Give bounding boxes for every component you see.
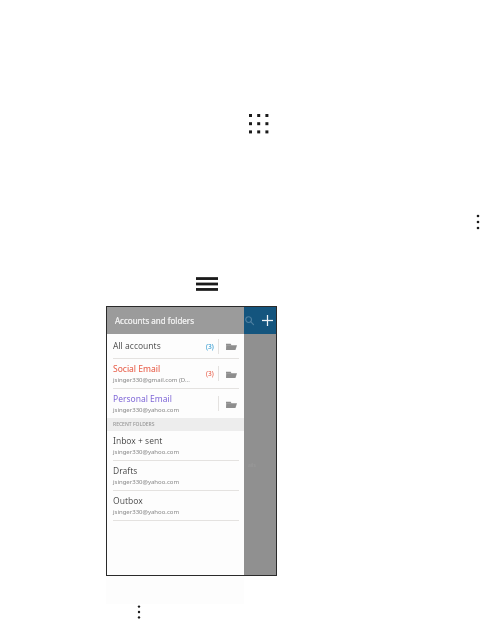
button[interactable]: Social Email xyxy=(106,359,244,388)
button[interactable]: Personal Email xyxy=(106,389,244,418)
staticText: Personal Email xyxy=(113,393,172,405)
staticText: jsinger330@yahoo.com xyxy=(113,448,180,456)
staticText: Outbox xyxy=(113,495,143,507)
staticText: Inbox + sent xyxy=(113,435,163,447)
staticText: jsinger330@yahoo.com xyxy=(113,478,180,486)
staticText: All accounts xyxy=(113,340,161,352)
staticText: (3) xyxy=(206,369,214,378)
button[interactable]: Add account xyxy=(258,311,276,329)
button[interactable]: Open folders xyxy=(223,366,239,382)
staticText: jsinger330@gmail.com (D... xyxy=(113,376,190,384)
staticText: Social Email xyxy=(113,363,161,375)
staticText: jsinger330@yahoo.com xyxy=(113,406,180,414)
button[interactable]: More options xyxy=(466,210,487,234)
staticText: Drafts xyxy=(113,465,138,477)
button[interactable]: Accounts and folders xyxy=(106,306,244,334)
button[interactable]: Apps xyxy=(245,110,271,136)
button[interactable]: Search xyxy=(242,313,256,327)
staticText: Accounts and folders xyxy=(115,315,194,326)
button[interactable]: Drafts xyxy=(106,461,244,490)
button[interactable]: All accounts xyxy=(106,334,244,358)
button[interactable]: Outbox xyxy=(106,491,244,520)
staticText: RECENT FOLDERS xyxy=(113,421,155,428)
staticText: jsinger330@yahoo.com xyxy=(113,508,180,516)
button[interactable]: More options xyxy=(127,600,151,622)
button[interactable]: Menu xyxy=(193,270,221,298)
staticText: (3) xyxy=(206,342,214,351)
button[interactable]: Inbox + sent xyxy=(106,431,244,460)
button[interactable]: Open folders xyxy=(223,338,239,354)
button[interactable]: Open folders xyxy=(223,396,239,412)
